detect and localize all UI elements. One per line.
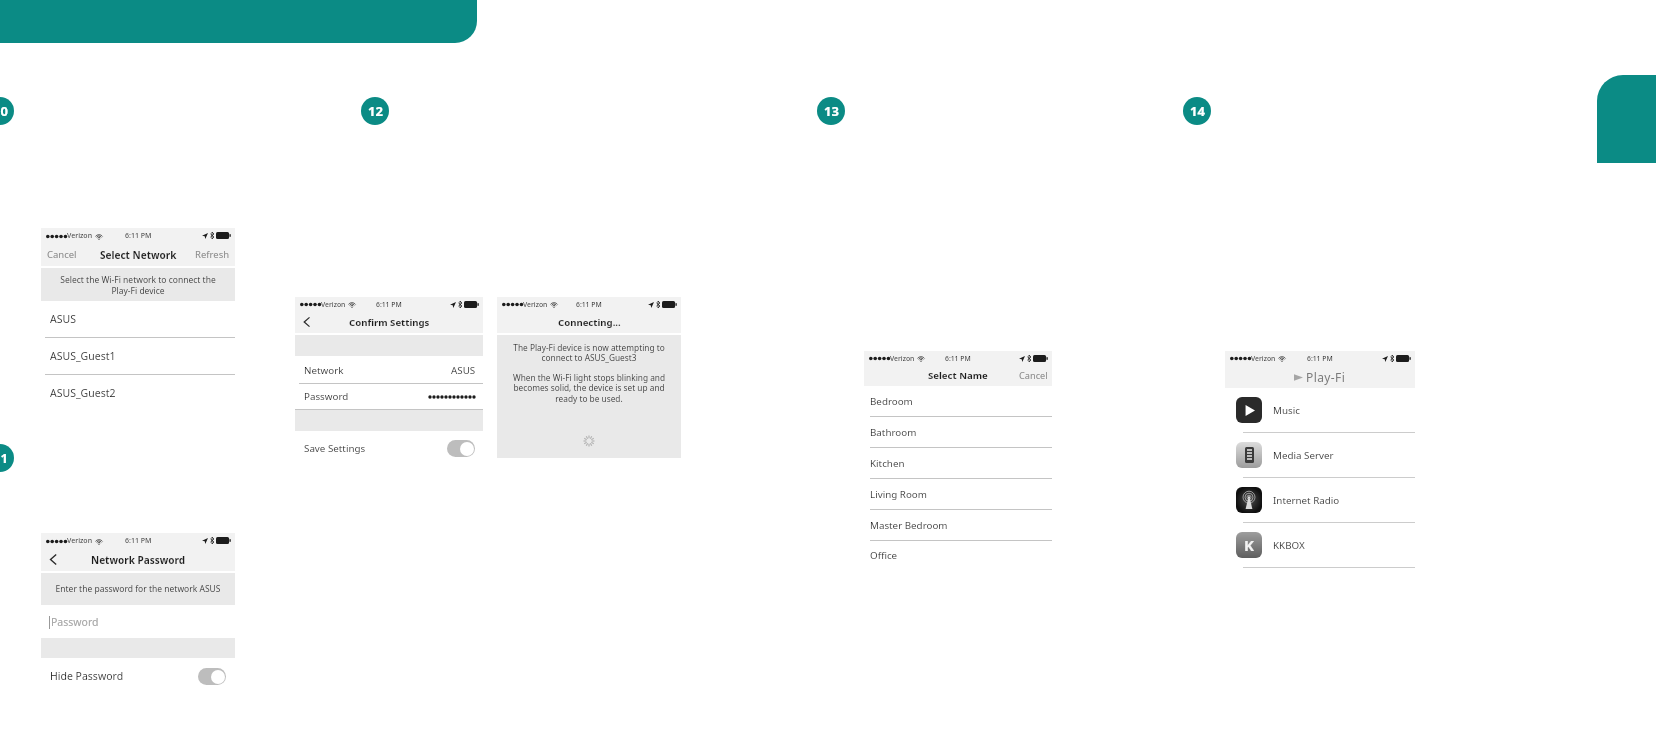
staticText: Select Name xyxy=(928,369,988,382)
button[interactable]: Master Bedroom xyxy=(864,510,1052,540)
button[interactable]: Toggle xyxy=(198,668,226,685)
staticText: Living Room xyxy=(870,488,927,501)
staticText: 6:11 PM xyxy=(376,300,402,309)
staticText: ASUS xyxy=(50,312,76,326)
other: Back xyxy=(300,315,314,329)
button[interactable]: Refresh xyxy=(195,248,230,261)
staticText: Password xyxy=(51,615,99,629)
staticText: Music xyxy=(1273,404,1300,417)
staticText: Verizon xyxy=(1251,354,1276,363)
staticText: Verizon xyxy=(67,536,93,546)
staticText: Select the Wi-Fi network to connect the … xyxy=(47,274,229,296)
staticText: Media Server xyxy=(1273,449,1334,462)
button[interactable]: ASUS xyxy=(41,301,235,337)
staticText: Network xyxy=(304,364,344,377)
button[interactable]: K xyxy=(1225,523,1415,567)
staticText: Verizon xyxy=(67,231,93,241)
staticText: 6:11 PM xyxy=(576,300,602,309)
staticText: Bathroom xyxy=(870,426,917,439)
staticText: KKBOX xyxy=(1273,539,1305,552)
staticText: 13 xyxy=(824,102,839,120)
staticText: Kitchen xyxy=(870,457,905,470)
button[interactable]: Network xyxy=(295,358,483,383)
button[interactable]: Back xyxy=(300,315,314,329)
button[interactable]: Music xyxy=(1225,388,1415,432)
staticText: Network Password xyxy=(91,553,186,567)
staticText: Confirm Settings xyxy=(349,316,430,329)
staticText: K xyxy=(1244,535,1254,555)
staticText: 6:11 PM xyxy=(945,354,971,363)
staticText: Connecting... xyxy=(558,316,621,329)
button[interactable]: Toggle xyxy=(447,440,475,457)
button[interactable]: Kitchen xyxy=(864,448,1052,478)
staticText: 11 xyxy=(0,449,8,467)
button[interactable]: Hide Password xyxy=(41,658,235,694)
staticText: ASUS xyxy=(451,364,476,377)
staticText: Verizon xyxy=(321,300,346,309)
staticText: Password xyxy=(304,390,349,403)
button[interactable]: Password xyxy=(41,605,235,638)
button[interactable]: Office xyxy=(864,541,1052,569)
button[interactable]: ASUS_Guest1 xyxy=(41,338,235,374)
button[interactable]: Cancel xyxy=(1019,369,1048,382)
staticText: 6:11 PM xyxy=(125,231,152,241)
button[interactable]: Living Room xyxy=(864,479,1052,509)
button[interactable]: Cancel xyxy=(47,248,77,261)
staticText: 10 xyxy=(0,102,8,120)
button[interactable]: Bathroom xyxy=(864,417,1052,447)
staticText: 6:11 PM xyxy=(125,536,152,546)
staticText: 6:11 PM xyxy=(1307,354,1333,363)
staticText: Master Bedroom xyxy=(870,519,948,532)
staticText: Hide Password xyxy=(50,669,124,683)
button[interactable]: Back xyxy=(46,552,61,567)
button[interactable]: Media Server xyxy=(1225,433,1415,477)
staticText: Enter the password for the network ASUS xyxy=(45,583,231,595)
staticText: 14 xyxy=(1190,102,1205,120)
staticText: Internet Radio xyxy=(1273,494,1340,507)
staticText: Verizon xyxy=(523,300,548,309)
staticText: Bedroom xyxy=(870,395,913,408)
staticText: Save Settings xyxy=(304,442,366,455)
button[interactable]: Save Settings xyxy=(295,433,483,463)
button[interactable]: ASUS_Guest2 xyxy=(41,375,235,411)
staticText: Play-Fi xyxy=(1306,369,1346,385)
staticText: Verizon xyxy=(890,354,915,363)
other: Back xyxy=(46,552,61,567)
button[interactable]: Password xyxy=(295,384,483,409)
staticText: Select Network xyxy=(100,248,177,262)
staticText: ASUS_Guest2 xyxy=(50,386,116,400)
button[interactable]: Bedroom xyxy=(864,386,1052,416)
staticText: The Play-Fi device is now attempting to … xyxy=(503,342,675,364)
staticText: Office xyxy=(870,549,898,562)
staticText: ASUS_Guest1 xyxy=(50,349,116,363)
button[interactable]: Internet Radio xyxy=(1225,478,1415,522)
staticText: When the Wi-Fi light stops blinking and … xyxy=(503,372,675,405)
staticText: 12 xyxy=(368,102,383,120)
